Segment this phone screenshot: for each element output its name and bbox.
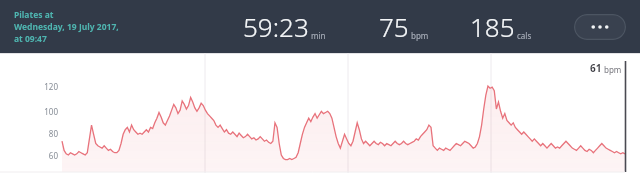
staticText: 75: [379, 9, 409, 44]
staticText: 59:23: [243, 9, 309, 44]
staticText: Pilates at: [14, 9, 54, 21]
button[interactable]: 59:23: [243, 9, 326, 44]
staticText: bpm: [604, 64, 622, 75]
staticText: at 09:47: [14, 33, 47, 45]
button[interactable]: 75: [379, 9, 429, 44]
button[interactable]: Pilates at: [14, 9, 119, 45]
staticText: 61: [590, 61, 602, 75]
staticText: Wednesday, 19 July 2017,: [14, 21, 119, 33]
button[interactable]: 61: [590, 61, 622, 75]
staticText: 80: [34, 128, 58, 139]
staticText: 185: [470, 9, 515, 44]
staticText: min: [311, 30, 326, 41]
staticText: bpm: [411, 30, 429, 41]
staticText: 60: [34, 150, 58, 161]
button[interactable]: More options: [574, 14, 626, 40]
button[interactable]: 185: [470, 9, 532, 44]
staticText: 100: [34, 106, 58, 117]
staticText: 120: [34, 81, 58, 92]
staticText: cals: [517, 30, 532, 41]
